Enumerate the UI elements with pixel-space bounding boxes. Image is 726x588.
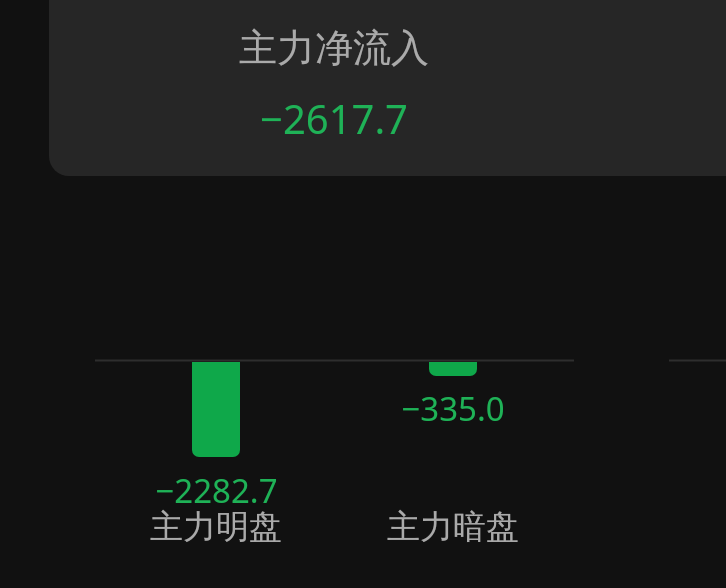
button[interactable]: 主力净流入: [49, 0, 726, 176]
staticText: 主力暗盘: [387, 506, 519, 548]
button[interactable]: 主力暗盘: [303, 506, 603, 548]
staticText: −2282.7: [155, 468, 278, 513]
staticText: 主力明盘: [150, 506, 282, 548]
staticText: −335.0: [401, 386, 505, 431]
staticText: −2617.7: [260, 91, 408, 145]
button[interactable]: −335.0: [303, 386, 603, 431]
staticText: 主力净流入: [239, 24, 429, 72]
button[interactable]: −2282.7: [66, 468, 366, 513]
button[interactable]: 主力明盘: [66, 506, 366, 548]
